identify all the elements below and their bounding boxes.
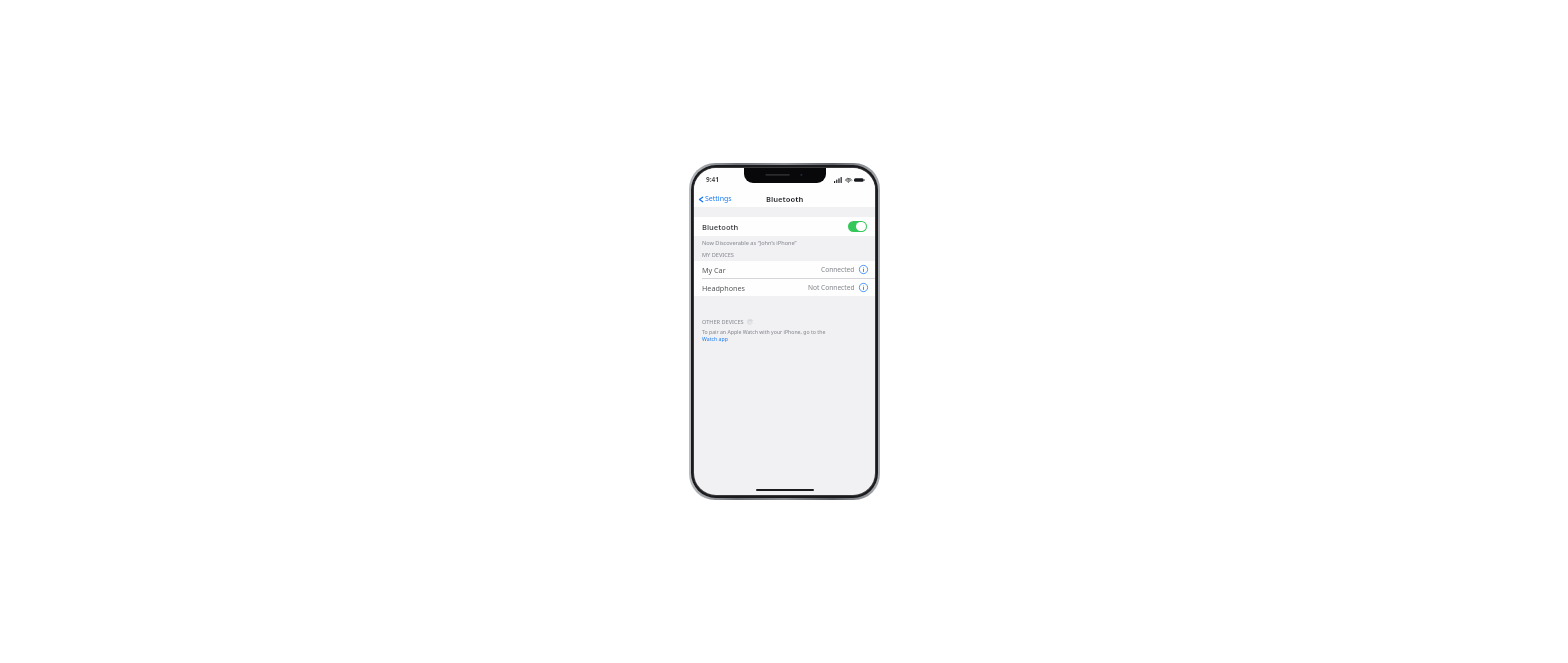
staticText: Not Connected	[808, 283, 855, 292]
button[interactable]: Bluetooth on	[848, 221, 867, 232]
staticText: To pair an Apple Watch with your iPhone,…	[702, 328, 826, 335]
staticText: Now Discoverable as “John’s iPhone”	[702, 239, 867, 247]
button[interactable]: My Car	[694, 261, 875, 278]
staticText: Connected	[821, 265, 855, 274]
staticText: Bluetooth	[702, 222, 739, 232]
staticText: OTHER DEVICES	[702, 318, 744, 326]
button[interactable]: Headphones	[694, 279, 875, 296]
button[interactable]: Bluetooth	[694, 217, 875, 236]
staticText: My Car	[702, 265, 726, 275]
staticText: Headphones	[702, 283, 745, 293]
button[interactable]: Settings	[694, 192, 738, 206]
staticText: Settings	[705, 194, 732, 204]
staticText: 9:41	[706, 175, 719, 184]
button[interactable]: More info about Headphones	[859, 283, 868, 292]
staticText: Bluetooth	[766, 194, 804, 204]
staticText: MY DEVICES	[702, 251, 734, 259]
button[interactable]: More info about My Car	[859, 265, 868, 274]
button[interactable]: Watch app	[702, 335, 728, 342]
